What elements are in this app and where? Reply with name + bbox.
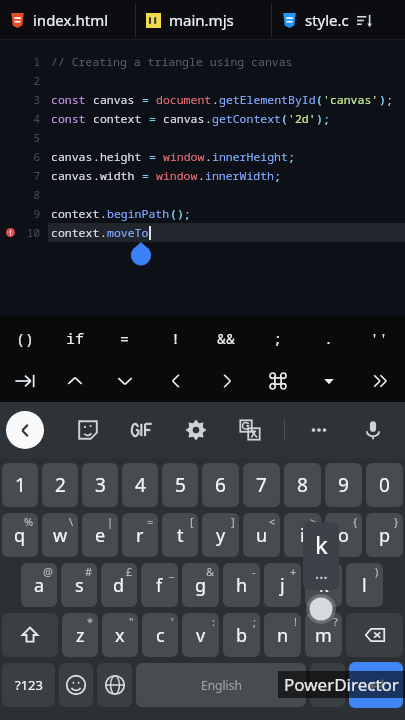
button[interactable]: Translate <box>230 410 270 450</box>
staticText: y <box>216 523 226 548</box>
button[interactable]: t <box>162 513 198 557</box>
staticText: ); <box>379 92 393 108</box>
button[interactable]: index.html <box>0 0 135 40</box>
staticText: getElementById <box>219 92 316 108</box>
button[interactable]: w <box>42 513 78 557</box>
button[interactable]: '' <box>354 316 405 359</box>
staticText: a <box>34 573 45 598</box>
button[interactable]: Tab <box>0 359 50 402</box>
button[interactable]: p <box>366 513 403 557</box>
button[interactable]: ; <box>252 316 303 359</box>
staticText: % <box>24 514 34 529</box>
staticText: getContext <box>212 111 281 127</box>
button[interactable]: 5 <box>162 463 198 507</box>
button[interactable]: GIF <box>122 410 162 450</box>
staticText: 9 <box>338 472 349 498</box>
button[interactable]: j <box>264 563 301 607</box>
staticText: . <box>100 206 107 222</box>
button[interactable]: Up <box>50 359 100 402</box>
button[interactable]: n <box>264 613 301 657</box>
button[interactable]: 8 <box>284 463 321 507</box>
button[interactable]: Shift <box>2 613 58 657</box>
button[interactable]: x <box>102 613 138 657</box>
button[interactable]: 3 <box>82 463 118 507</box>
button[interactable]: z <box>62 613 98 657</box>
staticText: ; <box>253 614 256 629</box>
staticText: ; <box>273 328 283 348</box>
staticText: b <box>236 623 248 648</box>
button[interactable]: m <box>305 613 342 657</box>
staticText: } <box>394 514 399 529</box>
staticText: . <box>325 675 330 695</box>
button[interactable]: Right <box>201 359 252 402</box>
staticText: window <box>156 168 198 184</box>
button[interactable]: e <box>82 513 118 557</box>
staticText: # <box>85 564 93 579</box>
button[interactable]: 9 <box>325 463 362 507</box>
staticText: = <box>120 328 130 348</box>
button[interactable]: Backspace <box>346 613 403 657</box>
button[interactable]: 1 <box>2 463 38 507</box>
button[interactable]: b <box>223 613 260 657</box>
staticText: . <box>205 149 212 165</box>
staticText: [ <box>190 514 194 529</box>
button[interactable]: main.mjs <box>136 0 271 40</box>
button[interactable]: Settings <box>176 410 216 450</box>
staticText: ( <box>281 111 288 127</box>
button[interactable]: g <box>182 563 219 607</box>
staticText: document <box>156 92 212 108</box>
button[interactable]: k <box>305 563 342 607</box>
staticText: .width <box>93 168 142 184</box>
button[interactable]: Stickers <box>68 410 108 450</box>
button[interactable]: Command <box>252 359 303 402</box>
button[interactable]: Language <box>97 663 132 707</box>
button[interactable]: y <box>202 513 239 557</box>
button[interactable]: ! <box>150 316 201 359</box>
button[interactable]: v <box>182 613 219 657</box>
button[interactable]: i <box>284 513 321 557</box>
button[interactable]: Left <box>150 359 201 402</box>
button[interactable]: Back <box>6 411 44 449</box>
button[interactable]: r <box>122 513 158 557</box>
button[interactable]: ?123 <box>2 663 55 707</box>
button[interactable]: Enter <box>349 662 403 708</box>
button[interactable]: . <box>303 316 354 359</box>
button[interactable]: 2 <box>42 463 78 507</box>
button[interactable]: . <box>310 663 345 707</box>
staticText: 3 <box>95 472 106 498</box>
button[interactable]: q <box>2 513 38 557</box>
staticText: 3 <box>33 92 40 107</box>
button[interactable]: h <box>223 563 260 607</box>
button[interactable]: && <box>201 316 252 359</box>
button[interactable]: Emoji <box>59 663 93 707</box>
button[interactable]: () <box>0 316 50 359</box>
button[interactable]: o <box>325 513 362 557</box>
button[interactable]: 1 <box>0 40 405 316</box>
button[interactable]: English <box>136 663 306 707</box>
button[interactable]: s <box>61 563 97 607</box>
button[interactable]: style.c <box>272 0 405 40</box>
button[interactable]: Down <box>100 359 150 402</box>
button[interactable]: Forward <box>354 359 405 402</box>
staticText: { <box>353 514 358 529</box>
button[interactable]: f <box>141 563 178 607</box>
button[interactable]: d <box>101 563 137 607</box>
button[interactable]: 6 <box>202 463 239 507</box>
button[interactable]: if <box>50 316 100 359</box>
button[interactable]: Dropdown <box>303 359 354 402</box>
staticText: 9 <box>33 206 40 221</box>
button[interactable]: 0 <box>366 463 403 507</box>
button[interactable]: c <box>142 613 178 657</box>
staticText: (); <box>170 206 191 222</box>
button[interactable]: More options <box>299 410 339 450</box>
staticText: q <box>14 523 26 548</box>
staticText: innerWidth <box>205 168 274 184</box>
button[interactable]: Voice input <box>353 410 393 450</box>
button[interactable]: l <box>346 563 383 607</box>
button[interactable]: a <box>21 563 57 607</box>
button[interactable]: 7 <box>243 463 280 507</box>
staticText: 1 <box>15 472 26 498</box>
button[interactable]: = <box>100 316 150 359</box>
button[interactable]: 4 <box>122 463 158 507</box>
button[interactable]: u <box>243 513 280 557</box>
